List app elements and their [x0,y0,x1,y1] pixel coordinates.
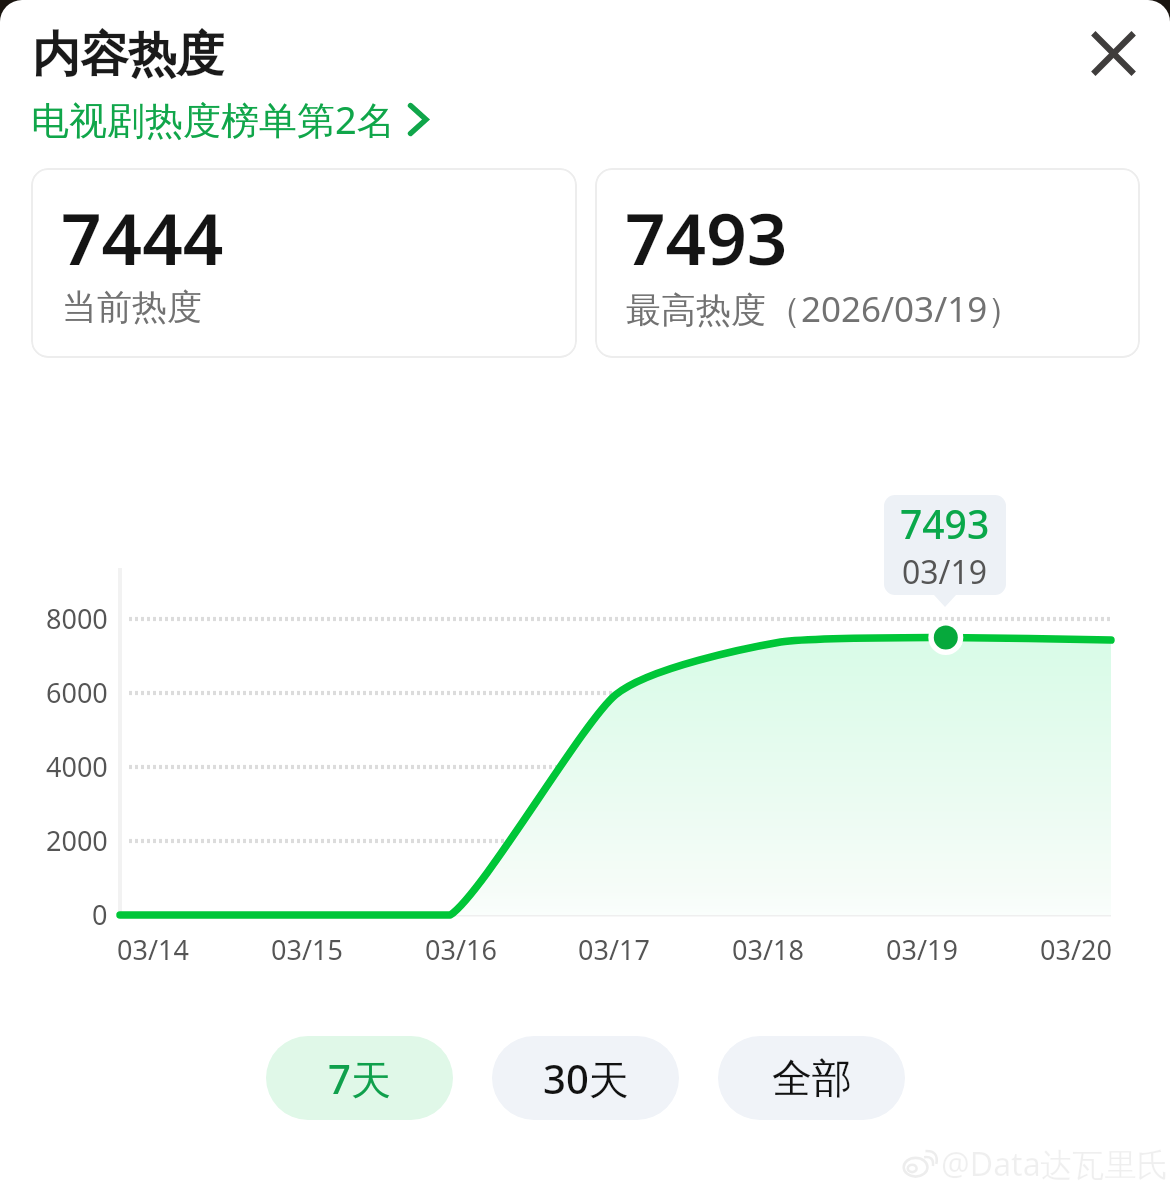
staticText: 7493 [625,189,788,286]
staticText: 30天 [543,1051,629,1106]
staticText: 0 [92,896,108,933]
staticText: 03/15 [271,931,343,968]
staticText: 03/19 [902,550,988,594]
staticText: 4000 [46,748,108,785]
staticText: 03/16 [425,931,497,968]
button[interactable]: 电视剧热度榜单第2名 [31,93,428,145]
staticText: 内容热度 [32,25,224,85]
staticText: 7天 [328,1051,391,1106]
staticText: 8000 [46,600,108,637]
staticText: 最高热度（2026/03/19） [626,285,1023,333]
button[interactable]: 30天 [492,1036,679,1120]
staticText: 2000 [46,822,108,859]
staticText: 当前热度 [62,285,202,329]
button[interactable]: 7天 [266,1036,453,1120]
staticText: 03/17 [578,931,650,968]
staticText: 03/18 [732,931,804,968]
staticText: 6000 [46,674,108,711]
staticText: 03/19 [886,931,958,968]
staticText: 全部 [772,1053,852,1103]
button[interactable]: 全部 [718,1036,905,1120]
staticText: 7444 [61,189,224,286]
staticText: 7493 [900,497,990,550]
staticText: @Data达瓦里氏 [941,1142,1169,1186]
button[interactable]: 7493 [595,168,1140,358]
staticText: 电视剧热度榜单第2名 [31,93,395,145]
staticText: 03/14 [117,931,189,968]
button[interactable]: Close [1070,10,1156,96]
button[interactable]: 7444 [31,168,577,358]
staticText: 03/20 [1040,931,1112,968]
